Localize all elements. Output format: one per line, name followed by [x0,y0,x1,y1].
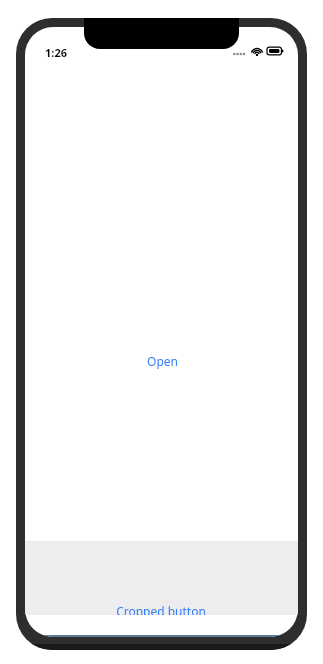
staticText: 1:26 [45,45,67,60]
button[interactable]: Cropped button [101,603,221,615]
button[interactable]: Open [138,349,186,373]
staticText: Cropped button [116,603,206,615]
staticText: Open [147,353,178,369]
